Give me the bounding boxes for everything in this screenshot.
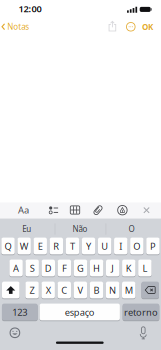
staticText: L <box>142 262 147 274</box>
button[interactable]: Fechar <box>143 207 150 213</box>
staticText: B <box>93 284 99 296</box>
staticText: K <box>126 262 132 274</box>
staticText: Z <box>30 284 35 296</box>
button[interactable]: Maiúsculas <box>2 281 19 299</box>
button[interactable]: Não <box>58 220 102 237</box>
button[interactable]: Z <box>25 281 39 299</box>
button[interactable]: V <box>74 281 87 299</box>
button[interactable]: M <box>122 281 135 299</box>
staticText: X <box>46 284 51 296</box>
staticText: S <box>30 262 35 274</box>
button[interactable]: Q <box>1 237 15 255</box>
button[interactable]: F <box>58 259 71 277</box>
staticText: OK <box>142 21 153 32</box>
staticText: D <box>45 262 52 274</box>
staticText: Não <box>72 223 87 234</box>
staticText: N <box>109 284 116 296</box>
staticText: T <box>70 240 75 252</box>
button[interactable]: Compartilhar <box>109 21 116 31</box>
button[interactable]: B <box>90 281 103 299</box>
staticText: Notas <box>7 21 29 32</box>
button[interactable]: T <box>66 237 79 255</box>
button[interactable]: U <box>98 237 111 255</box>
staticText: espaço <box>65 306 95 318</box>
button[interactable]: W <box>17 237 31 255</box>
button[interactable]: Ditado <box>139 327 147 339</box>
staticText: U <box>101 240 108 252</box>
staticText: I <box>119 240 122 252</box>
staticText: H <box>93 262 100 274</box>
button[interactable]: Emoji <box>10 328 20 338</box>
staticText: M <box>125 284 133 296</box>
button[interactable]: O <box>130 237 144 255</box>
staticText: 12:00 <box>18 2 41 15</box>
button[interactable]: Tabela <box>70 206 80 214</box>
staticText: Aa <box>18 204 29 216</box>
button[interactable]: Formato <box>18 204 29 216</box>
button[interactable]: G <box>74 259 87 277</box>
button[interactable]: X <box>41 281 55 299</box>
staticText: V <box>77 284 83 296</box>
staticText: G <box>77 262 84 274</box>
staticText: J <box>111 262 114 274</box>
staticText: P <box>150 240 156 252</box>
staticText: Q <box>5 240 12 252</box>
button[interactable]: R <box>50 237 63 255</box>
button[interactable]: A <box>9 259 23 277</box>
staticText: Eu <box>22 223 31 234</box>
button[interactable]: S <box>25 259 39 277</box>
staticText: O <box>128 223 134 234</box>
staticText: E <box>38 240 43 252</box>
button[interactable]: I <box>114 237 127 255</box>
button[interactable]: Mais <box>126 22 136 32</box>
button[interactable]: P <box>146 237 160 255</box>
button[interactable]: Marcação <box>118 205 127 215</box>
button[interactable]: Anexar <box>93 205 102 215</box>
button[interactable]: O <box>107 220 155 237</box>
staticText: Y <box>86 240 91 252</box>
button[interactable]: J <box>106 259 119 277</box>
button[interactable]: 123 <box>2 303 38 321</box>
button[interactable]: C <box>58 281 71 299</box>
staticText: F <box>62 262 67 274</box>
staticText: R <box>53 240 59 252</box>
button[interactable]: Notas <box>1 21 29 32</box>
button[interactable]: E <box>34 237 47 255</box>
staticText: O <box>133 240 140 252</box>
staticText: C <box>61 284 67 296</box>
staticText: A <box>13 262 19 274</box>
button[interactable]: OK <box>142 21 153 32</box>
button[interactable]: H <box>90 259 103 277</box>
button[interactable]: Lista <box>49 206 58 214</box>
button[interactable]: L <box>138 259 152 277</box>
button[interactable]: Apagar <box>141 281 159 299</box>
button[interactable]: N <box>106 281 119 299</box>
button[interactable]: Y <box>82 237 95 255</box>
staticText: 123 <box>12 306 27 318</box>
button[interactable]: D <box>42 259 55 277</box>
staticText: W <box>20 240 29 252</box>
button[interactable]: K <box>122 259 135 277</box>
staticText: retorno <box>124 306 158 318</box>
button[interactable]: espaço <box>40 303 120 321</box>
button[interactable]: retorno <box>123 303 159 321</box>
button[interactable]: Eu <box>3 220 51 237</box>
